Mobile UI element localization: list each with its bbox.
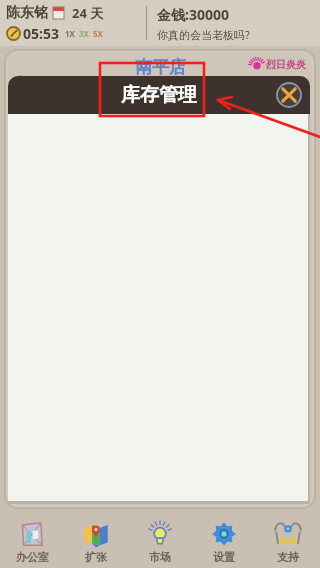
staticText: 05:53 xyxy=(23,24,59,43)
staticText: 3X xyxy=(79,28,89,39)
staticText: 烈日炎炎 xyxy=(266,58,306,71)
staticText: 金钱:30000 xyxy=(157,5,229,24)
button[interactable]: 办公室 xyxy=(0,512,64,568)
staticText: 扩张 xyxy=(85,550,107,564)
staticText: 24 天 xyxy=(72,4,104,22)
staticText: 设置 xyxy=(213,550,235,564)
staticText: 你真的会当老板吗? xyxy=(157,27,250,42)
button[interactable]: 扩张 xyxy=(64,512,128,568)
staticText: 办公室 xyxy=(16,550,49,564)
staticText: 市场 xyxy=(149,550,171,564)
button[interactable]: Close xyxy=(276,82,302,108)
button[interactable]: 支持 xyxy=(256,512,320,568)
staticText: 1X xyxy=(65,28,75,39)
staticText: 库存管理 xyxy=(121,83,197,107)
staticText: 陈东铭 xyxy=(6,4,48,22)
button[interactable]: 设置 xyxy=(192,512,256,568)
staticText: 南平店 xyxy=(135,57,186,78)
staticText: 5X xyxy=(93,28,103,39)
staticText: 支持 xyxy=(277,550,299,564)
button[interactable]: 市场 xyxy=(128,512,192,568)
